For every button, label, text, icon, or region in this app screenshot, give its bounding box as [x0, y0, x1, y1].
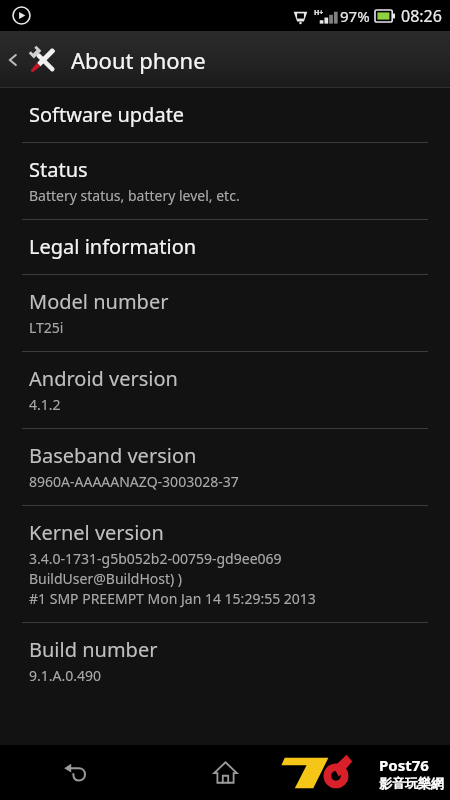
button[interactable]: Status [0, 143, 450, 219]
staticText: LT25i [29, 318, 64, 337]
staticText: 4.1.2 [29, 395, 61, 414]
staticText: 影音玩樂網 [379, 775, 444, 791]
staticText: About phone [71, 45, 206, 75]
button[interactable]: Home [150, 745, 300, 800]
button[interactable]: Legal information [0, 220, 450, 274]
staticText: Software update [29, 101, 185, 128]
button[interactable]: Up, About phone [0, 31, 450, 88]
staticText: Model number [29, 288, 169, 315]
staticText: Android version [29, 365, 178, 392]
staticText: #1 SMP PREEMPT Mon Jan 14 15:29:55 2013 [29, 589, 316, 608]
staticText: 8960A-AAAAANAZQ-3003028-37 [29, 472, 239, 491]
staticText: Post76 [379, 755, 429, 775]
staticText: Status [29, 156, 88, 183]
staticText: 08:26 [401, 5, 442, 27]
staticText: Build number [29, 636, 158, 663]
staticText: Kernel version [29, 519, 164, 546]
staticText: H+ [314, 8, 324, 18]
button[interactable]: Back [0, 745, 150, 800]
staticText: 9.1.A.0.490 [29, 666, 102, 685]
staticText: 3.4.0-1731-g5b052b2-00759-gd9ee069 [29, 549, 282, 568]
button[interactable]: Software update [0, 88, 450, 142]
staticText: 97% [340, 6, 370, 26]
staticText: Battery status, battery level, etc. [29, 186, 240, 205]
staticText: Legal information [29, 233, 197, 260]
staticText: BuildUser@BuildHost) ) [29, 569, 183, 588]
staticText: Baseband version [29, 442, 197, 469]
